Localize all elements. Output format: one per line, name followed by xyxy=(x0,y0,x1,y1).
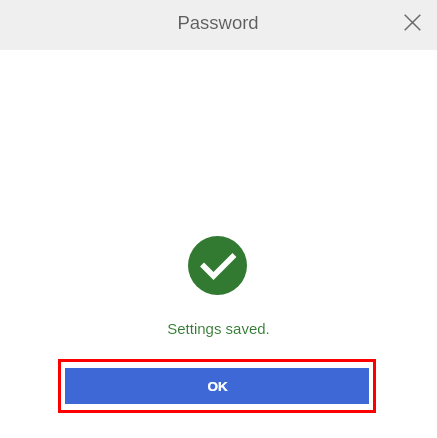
staticText: OK xyxy=(207,379,228,394)
button[interactable]: OK xyxy=(65,368,369,404)
staticText: Password xyxy=(177,12,259,33)
staticText: Settings saved. xyxy=(167,320,270,337)
button[interactable]: Close xyxy=(389,0,435,45)
